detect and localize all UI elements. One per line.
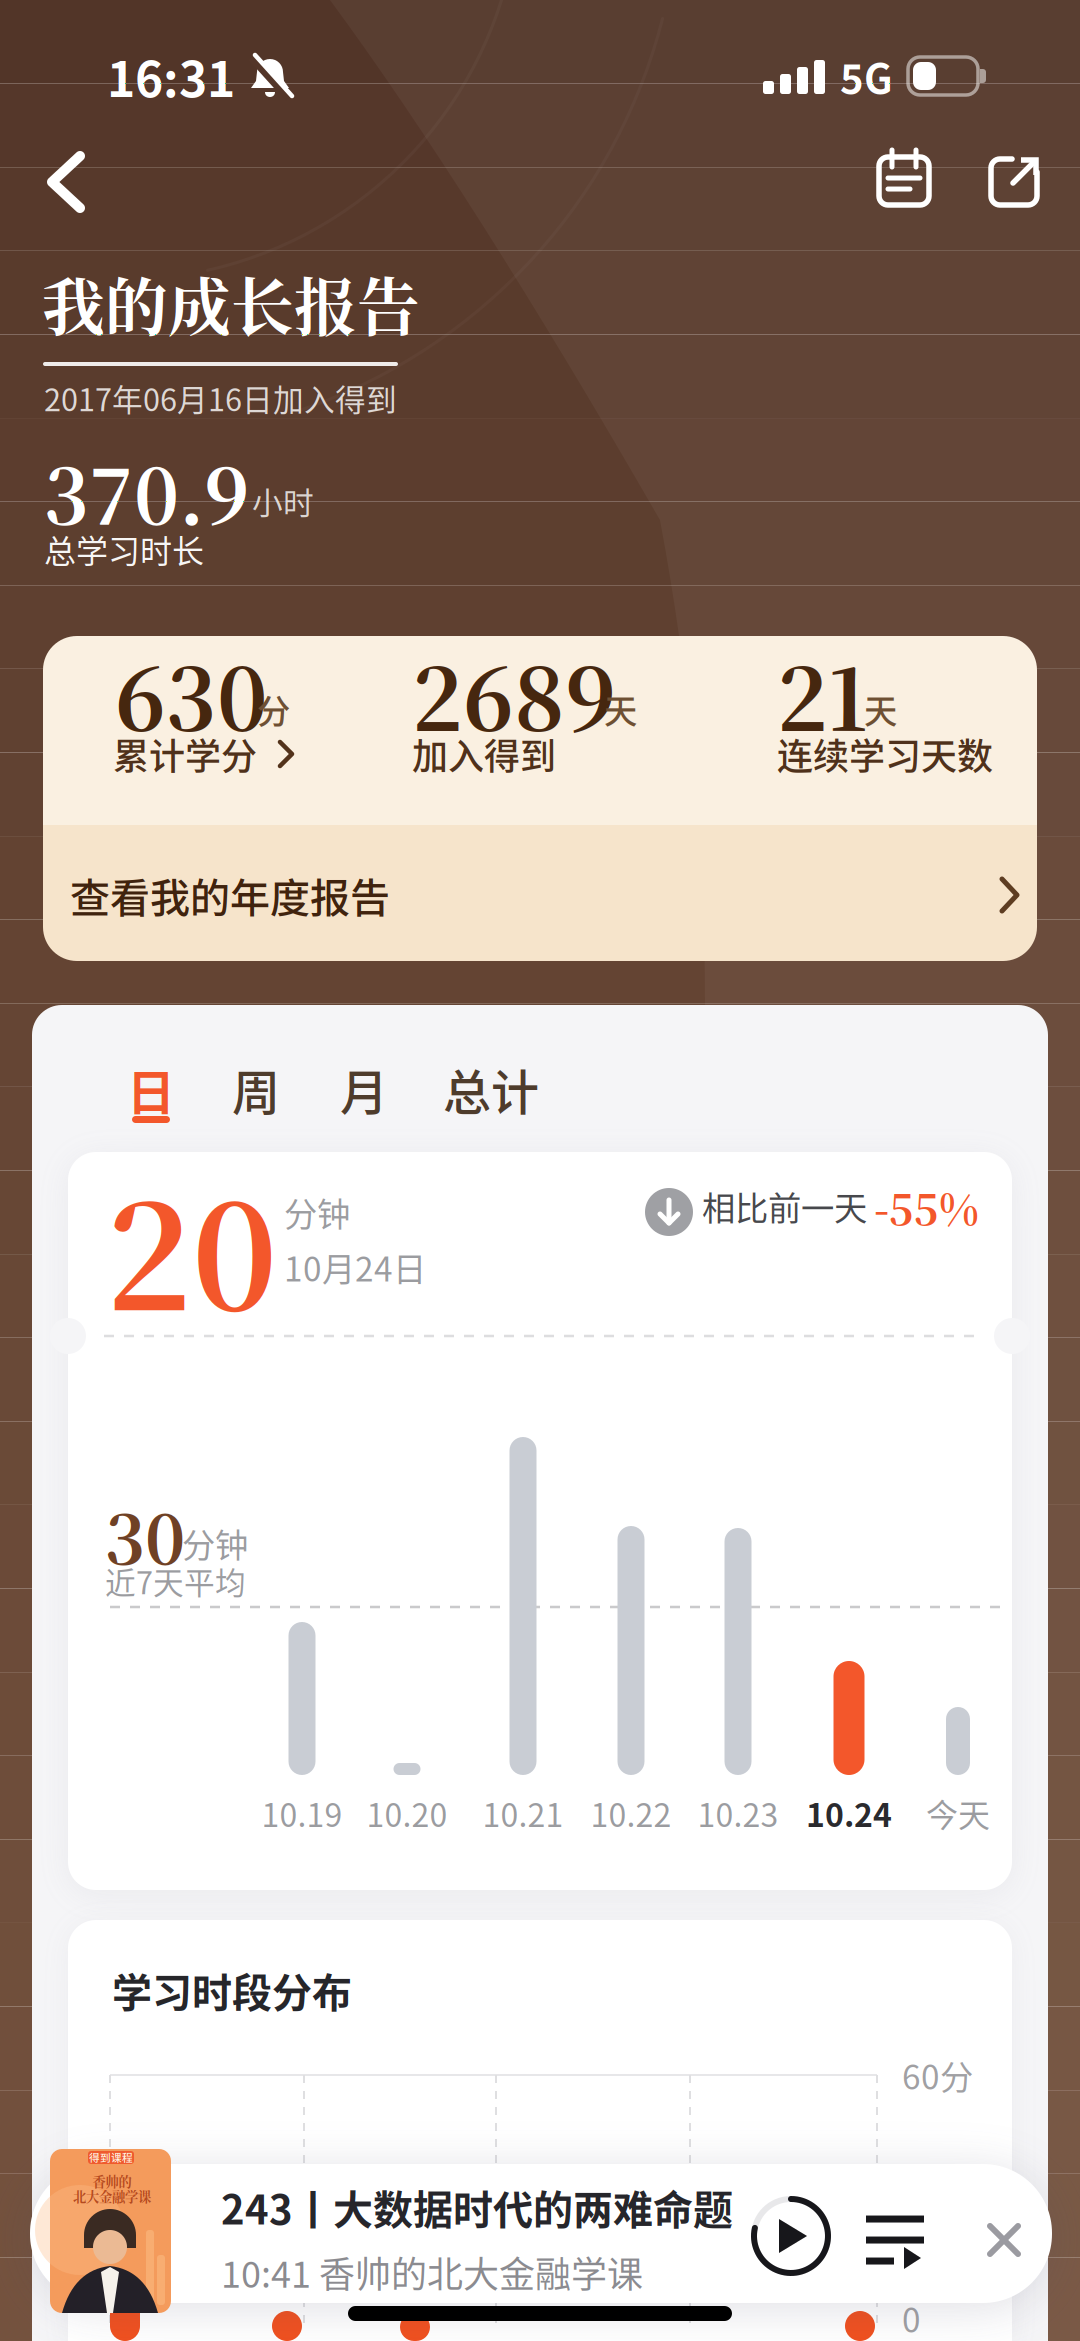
staticText: -55% bbox=[874, 1177, 979, 1237]
staticText: 10.19 bbox=[261, 1790, 342, 1836]
staticText: 累计学分 bbox=[113, 728, 257, 780]
staticText: 月 bbox=[340, 1054, 388, 1124]
staticText: 周 bbox=[232, 1054, 280, 1124]
staticText: 分 bbox=[257, 685, 290, 733]
staticText: 30 bbox=[105, 1486, 185, 1584]
staticText: 连续学习天数 bbox=[777, 728, 993, 780]
staticText: 分钟 bbox=[284, 1188, 350, 1236]
staticText: 近7天平均 bbox=[105, 1559, 246, 1603]
staticText: 加入得到 bbox=[412, 728, 556, 780]
button[interactable]: 总计 bbox=[411, 1039, 571, 1139]
staticText: 香帅的 bbox=[92, 2171, 131, 2191]
staticText: 总学习时长 bbox=[44, 526, 204, 572]
staticText: 得到课程 bbox=[89, 2149, 133, 2165]
staticText: 370.9 bbox=[44, 437, 249, 547]
staticText: 10.23 bbox=[697, 1790, 778, 1836]
staticText: 分钟 bbox=[182, 1519, 248, 1567]
staticText: 天 bbox=[604, 685, 637, 733]
staticText: 0 bbox=[902, 2294, 921, 2341]
staticText: 10.20 bbox=[366, 1790, 447, 1836]
staticText: 10.21 bbox=[482, 1790, 563, 1836]
staticText: 总计 bbox=[443, 1054, 539, 1124]
staticText: 21 bbox=[777, 633, 868, 755]
staticText: 日 bbox=[127, 1054, 175, 1124]
button[interactable]: 月 bbox=[309, 1039, 419, 1139]
staticText: 60分 bbox=[902, 2051, 973, 2099]
button[interactable]: 630 bbox=[43, 643, 363, 803]
staticText: 10.22 bbox=[590, 1790, 671, 1836]
button[interactable]: 周 bbox=[201, 1039, 311, 1139]
staticText: 相比前一天 bbox=[702, 1182, 867, 1230]
staticText: 243丨大数据时代的两难命题 bbox=[221, 2178, 733, 2236]
staticText: 天 bbox=[864, 685, 897, 733]
button[interactable]: Play bbox=[746, 2191, 836, 2281]
button[interactable]: Study calendar bbox=[868, 145, 940, 217]
button[interactable]: Back bbox=[36, 150, 100, 214]
staticText: 2689 bbox=[412, 633, 616, 755]
staticText: 查看我的年度报告 bbox=[70, 866, 390, 924]
staticText: 630 bbox=[115, 633, 268, 755]
button[interactable]: 日 bbox=[96, 1039, 206, 1139]
button[interactable]: Share bbox=[980, 146, 1052, 218]
staticText: 10.24 bbox=[806, 1790, 892, 1836]
staticText: 学习时段分布 bbox=[112, 1961, 352, 2019]
staticText: 5G bbox=[840, 47, 893, 105]
staticText: 16:31 bbox=[107, 41, 235, 111]
button[interactable]: Close player bbox=[969, 2205, 1039, 2275]
staticText: 2017年06月16日加入得到 bbox=[44, 376, 397, 420]
button[interactable]: Playlist bbox=[854, 2195, 938, 2285]
staticText: 20 bbox=[106, 1144, 277, 1351]
button[interactable]: 查看我的年度报告 bbox=[43, 825, 1037, 961]
staticText: 北大金融学课 bbox=[73, 2186, 151, 2206]
staticText: 今天 bbox=[926, 1790, 990, 1836]
staticText: 10月24日 bbox=[284, 1243, 426, 1291]
staticText: 10:41 香帅的北大金融学课 bbox=[221, 2246, 643, 2298]
staticText: 我的成长报告 bbox=[42, 258, 420, 348]
button[interactable]: 243丨大数据时代的两难命题 bbox=[221, 2178, 821, 2298]
staticText: 小时 bbox=[252, 479, 314, 523]
